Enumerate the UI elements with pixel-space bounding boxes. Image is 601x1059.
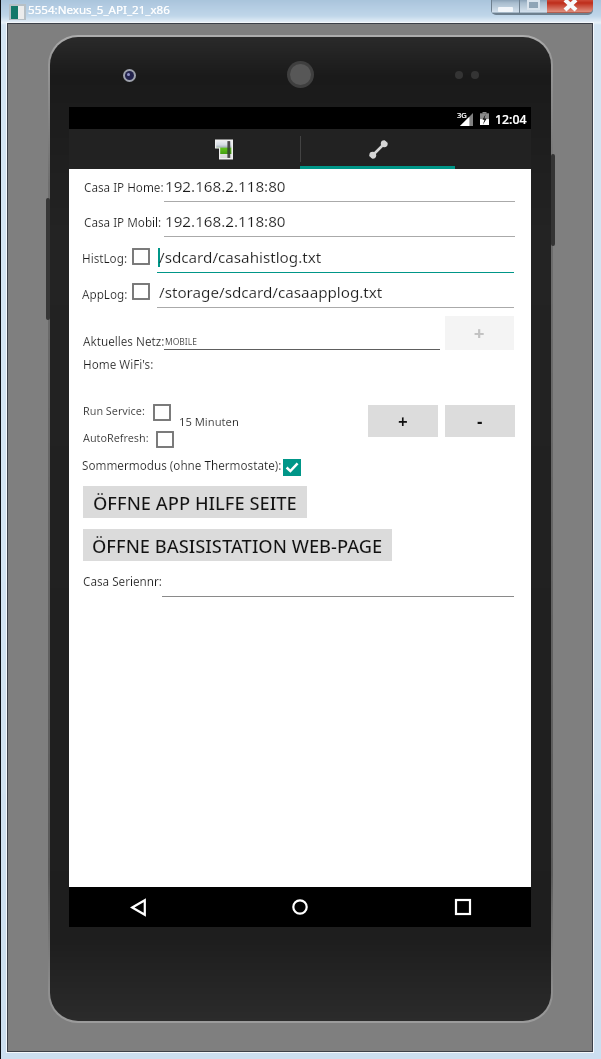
button[interactable]: Settings tab	[301, 129, 455, 169]
staticText: Run Service:	[83, 403, 193, 419]
staticText: -	[477, 410, 483, 433]
staticText: Home WiFi's:	[83, 356, 203, 372]
button[interactable]: Increase interval	[368, 405, 438, 437]
staticText: +	[398, 410, 408, 433]
button[interactable]: Overview tab	[145, 129, 300, 169]
staticText: /storage/sdcard/casaapplog.txt	[159, 282, 459, 302]
button[interactable]: Checkbox	[154, 405, 170, 420]
button[interactable]: Minimize	[492, 0, 519, 13]
staticText: AppLog:	[82, 286, 162, 302]
button[interactable]: Decrease interval	[445, 405, 515, 437]
button[interactable]: Checkbox	[133, 284, 149, 299]
button[interactable]: Recent apps	[408, 887, 518, 927]
staticText: 5554:Nexus_5_API_21_x86	[28, 2, 348, 20]
staticText: 192.168.2.118:80	[165, 176, 385, 196]
button[interactable]: ÖFFNE BASISISTATION WEB-PAGE	[83, 529, 392, 561]
staticText: HistLog:	[82, 250, 162, 266]
staticText: 12:04	[495, 111, 541, 129]
staticText: 15 Minuten	[179, 414, 289, 432]
button[interactable]: Maximize	[520, 0, 547, 13]
staticText: +	[474, 321, 485, 346]
staticText: Casa IP Mobil:	[84, 214, 204, 230]
button[interactable]: Checkbox	[283, 459, 301, 476]
staticText: AutoRefresh:	[83, 430, 193, 446]
staticText: 3G	[457, 110, 477, 120]
staticText: ÖFFNE BASISISTATION WEB-PAGE	[92, 533, 383, 558]
staticText: 192.168.2.118:80	[165, 211, 385, 231]
staticText: /sdcard/casahistlog.txt	[159, 247, 409, 267]
button[interactable]: Checkbox	[157, 432, 173, 447]
button[interactable]: Back	[83, 887, 193, 927]
staticText: Aktuelles Netz:	[83, 333, 203, 349]
staticText: Casa Seriennr:	[83, 573, 203, 589]
staticText: Sommermodus (ohne Thermostate):	[82, 457, 362, 473]
button[interactable]: Close	[547, 0, 593, 13]
button[interactable]: Home	[245, 887, 355, 927]
button[interactable]: Checkbox	[133, 249, 149, 264]
staticText: ÖFFNE APP HILFE SEITE	[93, 490, 297, 515]
staticText: MOBILE	[165, 336, 245, 348]
staticText: Casa IP Home:	[84, 179, 204, 195]
button[interactable]: Add WiFi network	[445, 316, 514, 350]
button[interactable]: ÖFFNE APP HILFE SEITE	[83, 486, 307, 518]
